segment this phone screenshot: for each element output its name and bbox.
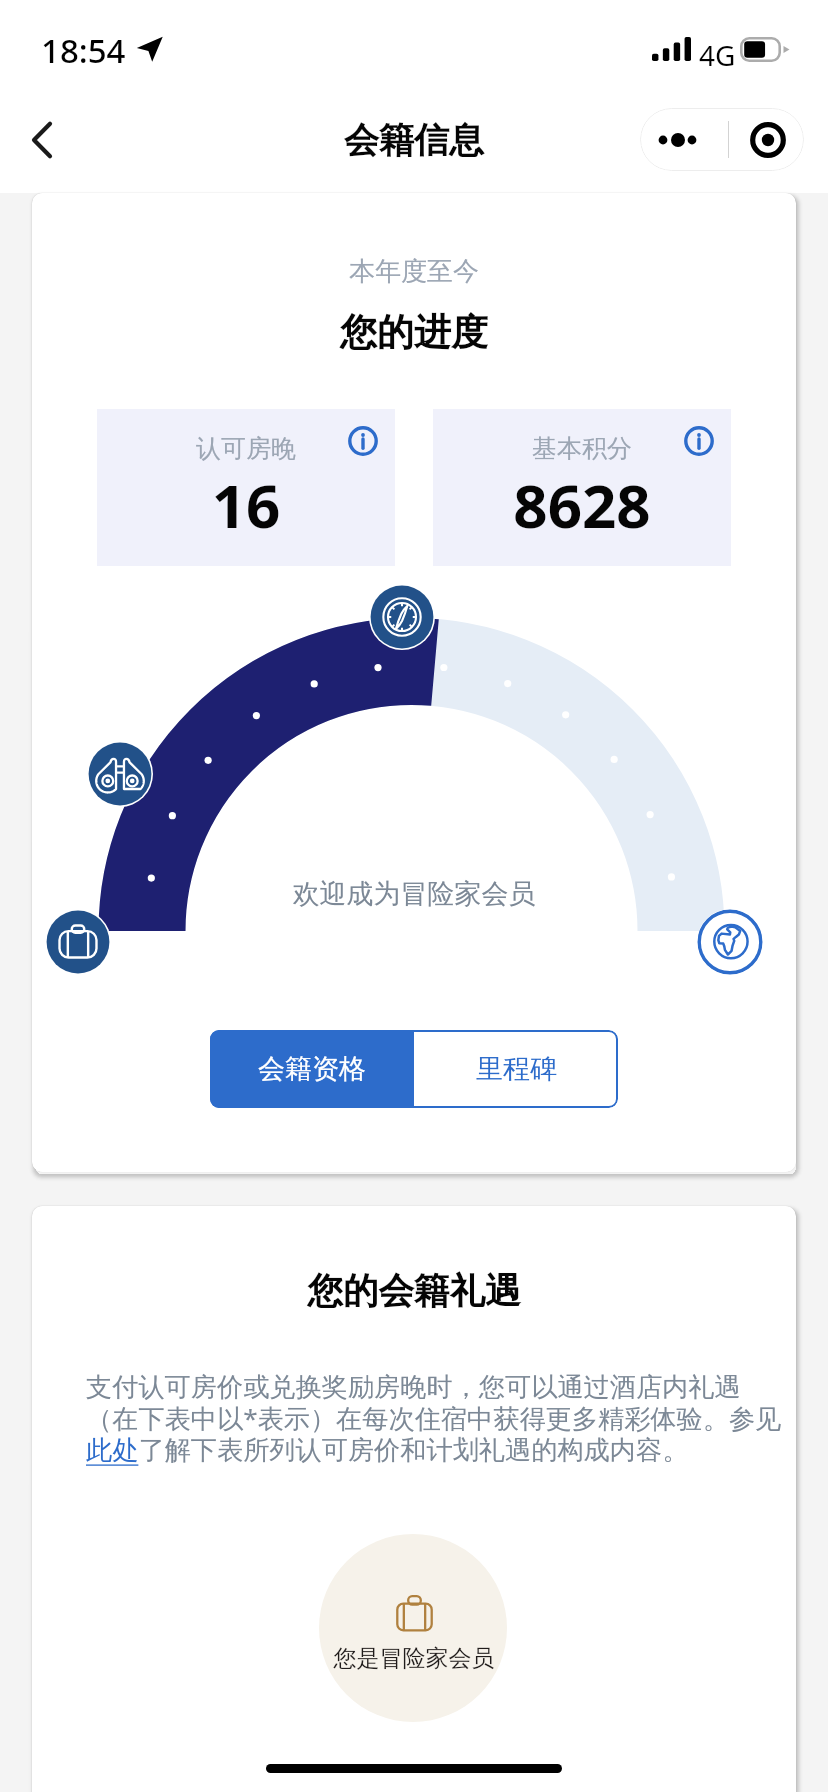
staticText: 4G (699, 36, 736, 74)
staticText: 会籍资格 (258, 1052, 366, 1086)
staticText: 您的会籍礼遇 (32, 1269, 796, 1314)
button[interactable]: Close mini program (729, 108, 804, 171)
staticText: 基本积分 (433, 433, 731, 464)
staticText: 本年度至今 (32, 255, 796, 288)
staticText: 支付认可房价或兑换奖励房晚时，您可以通过酒店内礼遇 （在下表中以*表示）在每次住… (86, 1371, 796, 1467)
staticText: 18:54 (41, 28, 126, 73)
staticText: 您的进度 (32, 309, 796, 356)
button[interactable]: 基本积分 (433, 409, 731, 566)
button[interactable]: 认可房晚 (97, 409, 395, 566)
staticText: 16 (97, 464, 395, 546)
staticText: 认可房晚 (97, 433, 395, 464)
staticText: 欢迎成为冒险家会员 (32, 877, 796, 911)
button[interactable]: Explorer level (45, 909, 111, 975)
button[interactable]: Info (346, 424, 380, 458)
button[interactable]: 会籍资格 (210, 1030, 414, 1108)
staticText: 8628 (433, 464, 731, 546)
button[interactable]: More options (640, 108, 728, 171)
staticText: 里程碑 (476, 1052, 557, 1086)
button[interactable]: Adventurer level (87, 741, 153, 807)
button[interactable]: Info (682, 424, 716, 458)
button[interactable]: Back (14, 112, 70, 168)
button[interactable] (319, 1534, 507, 1722)
button[interactable]: Globetrotter level (697, 909, 763, 975)
staticText: 您是冒险家会员 (32, 1644, 796, 1673)
staticText: 会籍信息 (344, 118, 484, 162)
button[interactable]: 里程碑 (414, 1030, 618, 1108)
button[interactable]: Navigator level (369, 584, 435, 650)
